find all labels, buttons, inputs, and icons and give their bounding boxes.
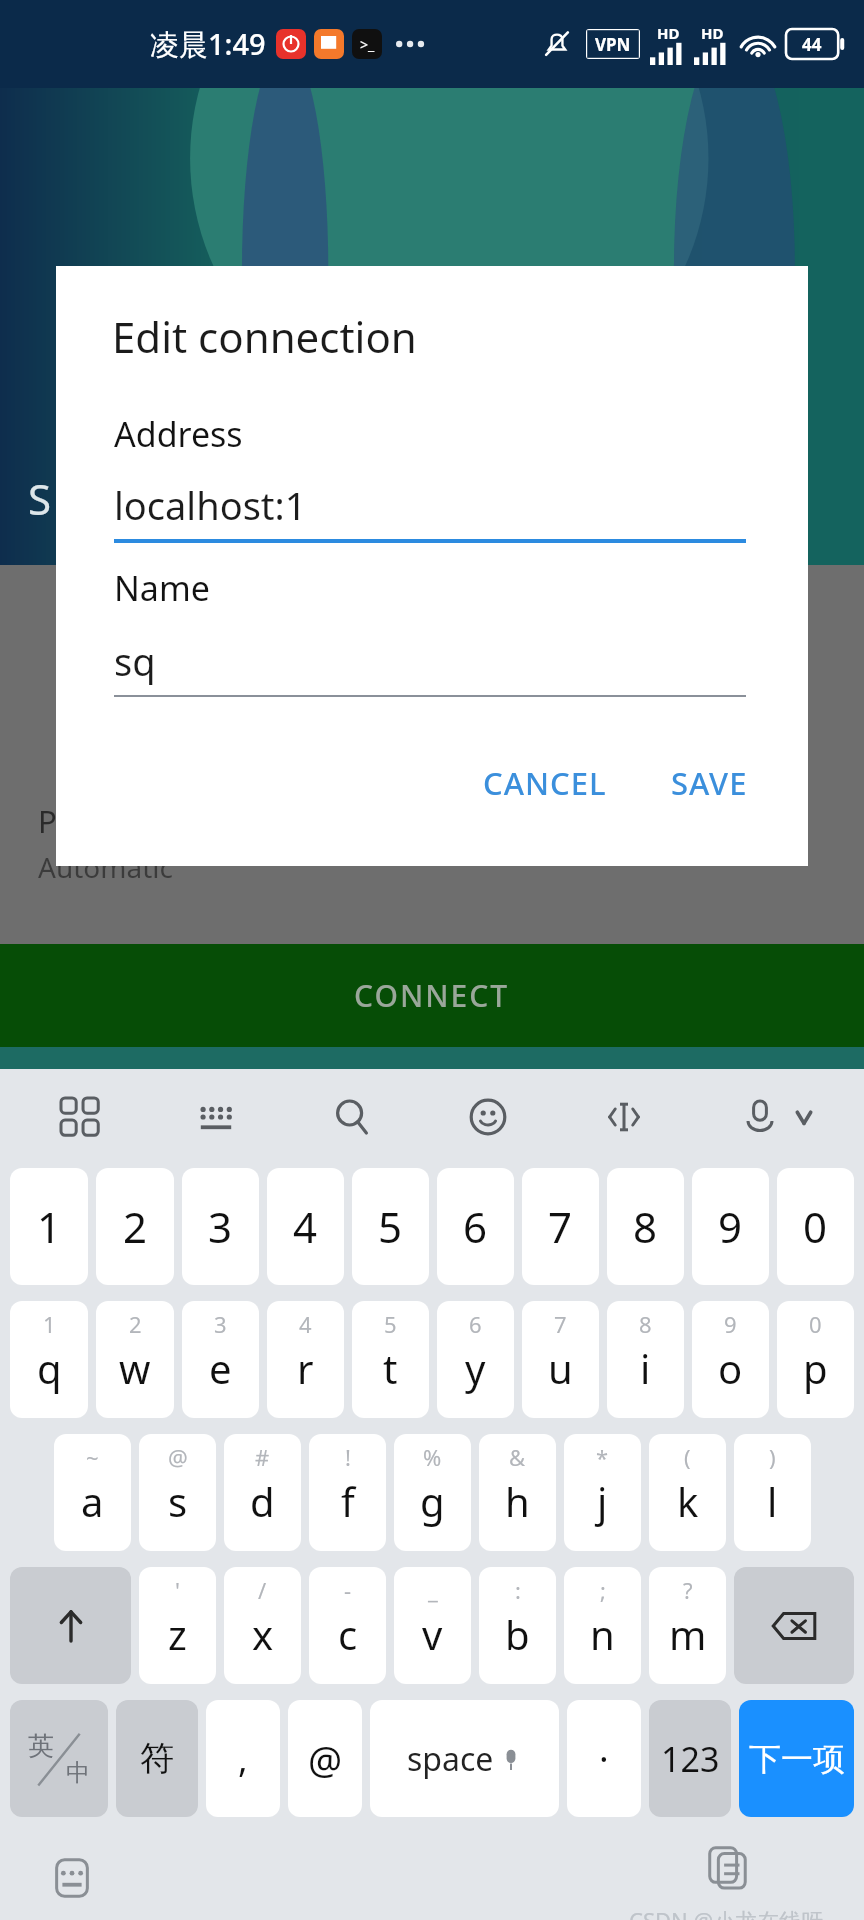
staticText: Picture quality <box>38 800 247 842</box>
button[interactable]: 0 <box>777 1301 854 1418</box>
button[interactable]: · <box>567 1700 641 1817</box>
staticText: @ <box>308 1733 343 1785</box>
button[interactable]: 123 <box>649 1700 731 1817</box>
button[interactable]: 4 <box>267 1301 344 1418</box>
staticText: 1 <box>43 1309 56 1339</box>
button[interactable]: 0 <box>777 1168 854 1285</box>
button[interactable]: Cursor control <box>592 1085 656 1149</box>
staticText: 4 <box>293 1198 318 1255</box>
button[interactable]: ~ <box>54 1434 131 1551</box>
staticText: VPN <box>595 33 631 56</box>
button[interactable]: ; <box>564 1567 641 1684</box>
button[interactable]: 3 <box>182 1301 259 1418</box>
button[interactable]: * <box>564 1434 641 1551</box>
staticText: Edit connection <box>112 308 417 365</box>
button[interactable]: % <box>394 1434 471 1551</box>
button[interactable]: 7 <box>522 1168 599 1285</box>
button[interactable]: 下一项 <box>739 1700 854 1817</box>
staticText: b <box>505 1607 530 1661</box>
button[interactable]: @ <box>139 1434 216 1551</box>
staticText: ) <box>769 1442 776 1472</box>
button[interactable]: _ <box>394 1567 471 1684</box>
staticText: r <box>297 1341 314 1395</box>
staticText: ! <box>345 1442 351 1472</box>
staticText: CANCEL <box>483 762 607 804</box>
button[interactable]: 2 <box>96 1301 174 1418</box>
button[interactable]: 8 <box>607 1168 684 1285</box>
button[interactable]: space <box>370 1700 559 1817</box>
button[interactable]: 9 <box>692 1168 769 1285</box>
staticText: / <box>258 1575 267 1605</box>
staticText: sq <box>114 635 156 687</box>
staticText: - <box>344 1575 352 1605</box>
button[interactable]: : <box>479 1567 556 1684</box>
button[interactable]: More options <box>770 24 842 96</box>
button[interactable]: 7 <box>522 1301 599 1418</box>
button[interactable]: Clipboard <box>48 1085 112 1149</box>
button[interactable]: 2 <box>96 1168 174 1285</box>
button[interactable]: 3 <box>182 1168 259 1285</box>
staticText: 7 <box>554 1309 567 1339</box>
staticText: , <box>238 1734 248 1783</box>
button[interactable]: / <box>224 1567 301 1684</box>
button[interactable]: Keyboard switcher <box>40 1846 104 1910</box>
button[interactable]: @ <box>288 1700 362 1817</box>
button[interactable]: 1 <box>10 1168 88 1285</box>
button[interactable]: Hide keyboard <box>792 1085 816 1149</box>
staticText: o <box>718 1341 743 1395</box>
staticText: f <box>341 1474 355 1528</box>
button[interactable]: Backspace <box>734 1567 854 1684</box>
button[interactable]: , <box>206 1700 280 1817</box>
staticText: g <box>420 1474 445 1528</box>
button[interactable]: CANCEL <box>463 748 627 818</box>
staticText: 9 <box>724 1309 737 1339</box>
button[interactable]: Keyboard layout <box>184 1085 248 1149</box>
staticText: 0 <box>803 1198 828 1255</box>
staticText: 7 <box>548 1198 573 1255</box>
staticText: SAVE <box>671 762 748 804</box>
button[interactable]: Copy <box>695 1835 759 1899</box>
staticText: 3 <box>214 1309 227 1339</box>
staticText: @ <box>168 1442 188 1472</box>
button[interactable]: CONNECT <box>0 944 864 1047</box>
button[interactable]: Back <box>22 18 106 102</box>
button[interactable]: ? <box>649 1567 726 1684</box>
button[interactable]: 5 <box>352 1301 429 1418</box>
staticText: c <box>338 1607 358 1661</box>
staticText: 5 <box>378 1198 403 1255</box>
staticText: n <box>590 1607 615 1661</box>
button[interactable]: 1 <box>10 1301 88 1418</box>
staticText: 123 <box>661 1736 720 1782</box>
button[interactable]: & <box>479 1434 556 1551</box>
button[interactable]: ) <box>734 1434 811 1551</box>
staticText: 4 <box>299 1309 312 1339</box>
button[interactable]: 5 <box>352 1168 429 1285</box>
staticText: 0 <box>809 1309 822 1339</box>
staticText: i <box>640 1341 651 1395</box>
staticText: · <box>599 1734 609 1783</box>
button[interactable]: SAVE <box>651 748 768 818</box>
button[interactable]: - <box>309 1567 386 1684</box>
staticText: 3 <box>208 1198 233 1255</box>
button[interactable]: ( <box>649 1434 726 1551</box>
staticText: 中 <box>66 1758 90 1788</box>
button[interactable]: Shift <box>10 1567 131 1684</box>
button[interactable]: 8 <box>607 1301 684 1418</box>
button[interactable]: Search <box>320 1085 384 1149</box>
button[interactable]: Delete <box>686 18 770 102</box>
button[interactable]: ! <box>309 1434 386 1551</box>
button[interactable]: 6 <box>437 1301 514 1418</box>
button[interactable]: Emoji <box>456 1085 520 1149</box>
button[interactable]: ' <box>139 1567 216 1684</box>
button[interactable]: Picture quality <box>0 785 864 900</box>
button[interactable]: 符 <box>116 1700 198 1817</box>
button[interactable]: 9 <box>692 1301 769 1418</box>
staticText: space <box>407 1737 494 1781</box>
staticText: h <box>505 1474 530 1528</box>
staticText: 1 <box>37 1198 62 1255</box>
button[interactable]: 6 <box>437 1168 514 1285</box>
button[interactable]: # <box>224 1434 301 1551</box>
button[interactable]: 4 <box>267 1168 344 1285</box>
button[interactable]: Voice input <box>728 1085 792 1149</box>
button[interactable]: Switch language <box>10 1700 108 1817</box>
